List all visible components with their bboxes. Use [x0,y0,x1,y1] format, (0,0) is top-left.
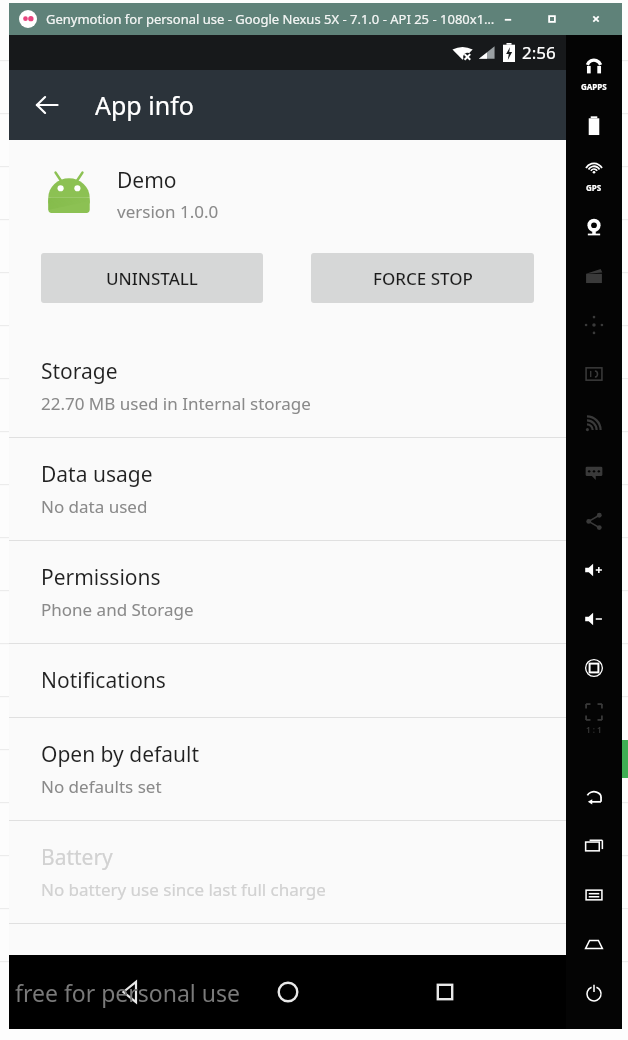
staticText: version 1.0.0 [117,200,219,223]
staticText: Battery [41,843,113,872]
button[interactable]: Maximize [530,3,574,35]
staticText: free for personal use [15,977,240,1008]
button[interactable]: Battery [566,101,622,150]
staticText: Phone and Storage [41,598,194,621]
button[interactable]: Network [566,398,622,447]
staticText: Data usage [41,460,153,489]
button[interactable]: Volume up [566,545,622,594]
button[interactable]: Accelerometer [566,300,622,349]
button[interactable]: GAPPS [566,49,622,101]
staticText: App info [95,88,194,122]
staticText: 1 : 1 [586,724,602,735]
staticText: Demo [117,166,177,195]
staticText: GPS [586,182,602,193]
button[interactable]: Battery [9,821,566,923]
staticText: Notifications [41,666,166,695]
button[interactable]: Recents [566,821,622,870]
button[interactable]: GPS [566,150,622,202]
staticText: Genymotion for personal use - Google Nex… [46,10,495,28]
staticText: Open by default [41,740,200,769]
staticText: No data used [41,495,148,518]
staticText: Storage [41,357,118,386]
button[interactable]: Home [252,956,324,1028]
button[interactable]: Close [574,3,618,35]
staticText: 22.70 MB used in Internal storage [41,392,311,415]
button[interactable]: Open by default [9,718,566,820]
button[interactable]: Back [94,956,166,1028]
button[interactable]: Share [566,496,622,545]
button[interactable]: Menu [566,870,622,919]
button[interactable]: Data usage [9,438,566,540]
button[interactable]: Record screen [566,251,622,300]
staticText: GAPPS [581,81,607,92]
staticText: Permissions [41,563,161,592]
button[interactable]: Permissions [9,541,566,643]
staticText: UNINSTALL [106,267,198,290]
button[interactable]: Volume down [566,594,622,643]
button[interactable]: Power [566,968,622,1017]
staticText: No battery use since last full charge [41,878,326,901]
button[interactable]: SMS [566,447,622,496]
button[interactable]: Rotate [566,643,622,692]
button[interactable]: Actual size [566,692,622,744]
button[interactable]: Back [23,81,71,129]
button[interactable]: Identifiers [566,349,622,398]
button[interactable]: Notifications [9,644,566,717]
button[interactable]: Storage [9,335,566,437]
button[interactable]: FORCE STOP [311,253,534,303]
button[interactable]: UNINSTALL [41,253,263,303]
button[interactable]: Camera [566,202,622,251]
button[interactable]: Back [566,772,622,821]
button[interactable]: Minimize [486,3,530,35]
staticText: FORCE STOP [373,267,473,290]
staticText: No defaults set [41,775,162,798]
staticText: 2:56 [522,41,556,64]
button[interactable]: Home [566,919,622,968]
button[interactable]: Recents [409,956,481,1028]
